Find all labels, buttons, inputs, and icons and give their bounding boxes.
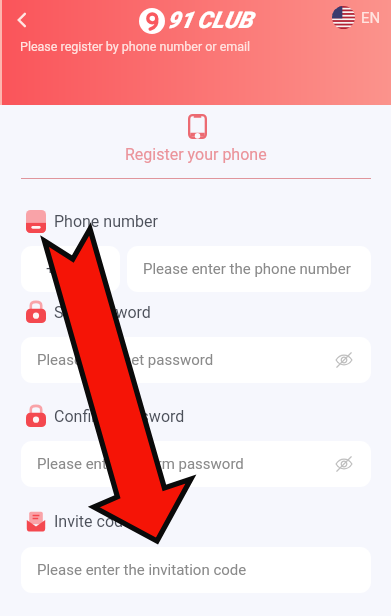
staticText: Please enter set password — [37, 351, 214, 369]
staticText: Please register by phone number or email — [20, 39, 251, 54]
staticText: 91 — [167, 7, 193, 34]
button[interactable]: Phone number — [26, 210, 158, 233]
button[interactable]: +91 — [21, 246, 120, 292]
button[interactable]: Please enter the invitation code — [21, 547, 371, 593]
staticText: CLUB — [197, 7, 253, 34]
button[interactable]: Back — [6, 4, 38, 36]
button[interactable]: Please enter set password — [21, 337, 371, 383]
button[interactable]: Please enter confirm password — [21, 441, 371, 487]
button[interactable]: Invite code — [26, 510, 132, 533]
staticText: +91 — [46, 260, 72, 278]
button[interactable]: 91 — [139, 7, 253, 34]
staticText: EN — [361, 9, 381, 27]
button[interactable]: Register your phone — [125, 145, 267, 164]
staticText: Confirm password — [54, 407, 185, 426]
staticText: Please enter the invitation code — [37, 561, 247, 579]
staticText: Phone number — [54, 212, 158, 231]
button[interactable]: Set password — [26, 301, 151, 324]
button[interactable]: Confirm password — [26, 405, 185, 428]
button[interactable]: Please enter the phone number — [127, 246, 371, 292]
staticText: Invite code — [54, 512, 132, 531]
staticText: Set password — [54, 303, 151, 322]
staticText: Please enter the phone number — [143, 260, 351, 278]
button[interactable]: Show password — [331, 347, 357, 373]
button[interactable]: EN — [332, 6, 381, 29]
staticText: Please enter confirm password — [37, 455, 244, 473]
button[interactable]: Show password — [331, 451, 357, 477]
